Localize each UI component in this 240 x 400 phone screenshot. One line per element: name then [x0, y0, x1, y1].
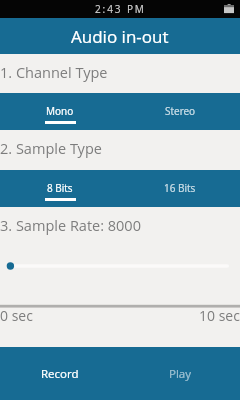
staticText: 8 Bits	[47, 181, 73, 195]
staticText: 2:43 PM	[95, 2, 146, 16]
button[interactable]: Play	[120, 347, 240, 400]
button[interactable]: 16 Bits	[120, 170, 240, 207]
staticText: 10 sec	[199, 306, 240, 325]
staticText: 3. Sample Rate: 8000	[0, 216, 141, 236]
button[interactable]: Stereo	[120, 93, 240, 130]
staticText: Record	[41, 366, 79, 382]
staticText: 0 sec	[0, 306, 33, 325]
staticText: Mono	[46, 104, 74, 118]
button[interactable]: 8 Bits	[0, 170, 120, 207]
staticText: 2. Sample Type	[0, 139, 102, 159]
staticText: 16 Bits	[164, 181, 196, 195]
button[interactable]: Mono	[0, 93, 120, 130]
other: Battery	[224, 4, 234, 14]
staticText: Stereo	[165, 104, 196, 118]
staticText: Audio in-out	[71, 25, 169, 48]
staticText: 1. Channel Type	[0, 63, 108, 83]
staticText: Play	[169, 366, 192, 382]
button[interactable]: Record	[0, 347, 120, 400]
